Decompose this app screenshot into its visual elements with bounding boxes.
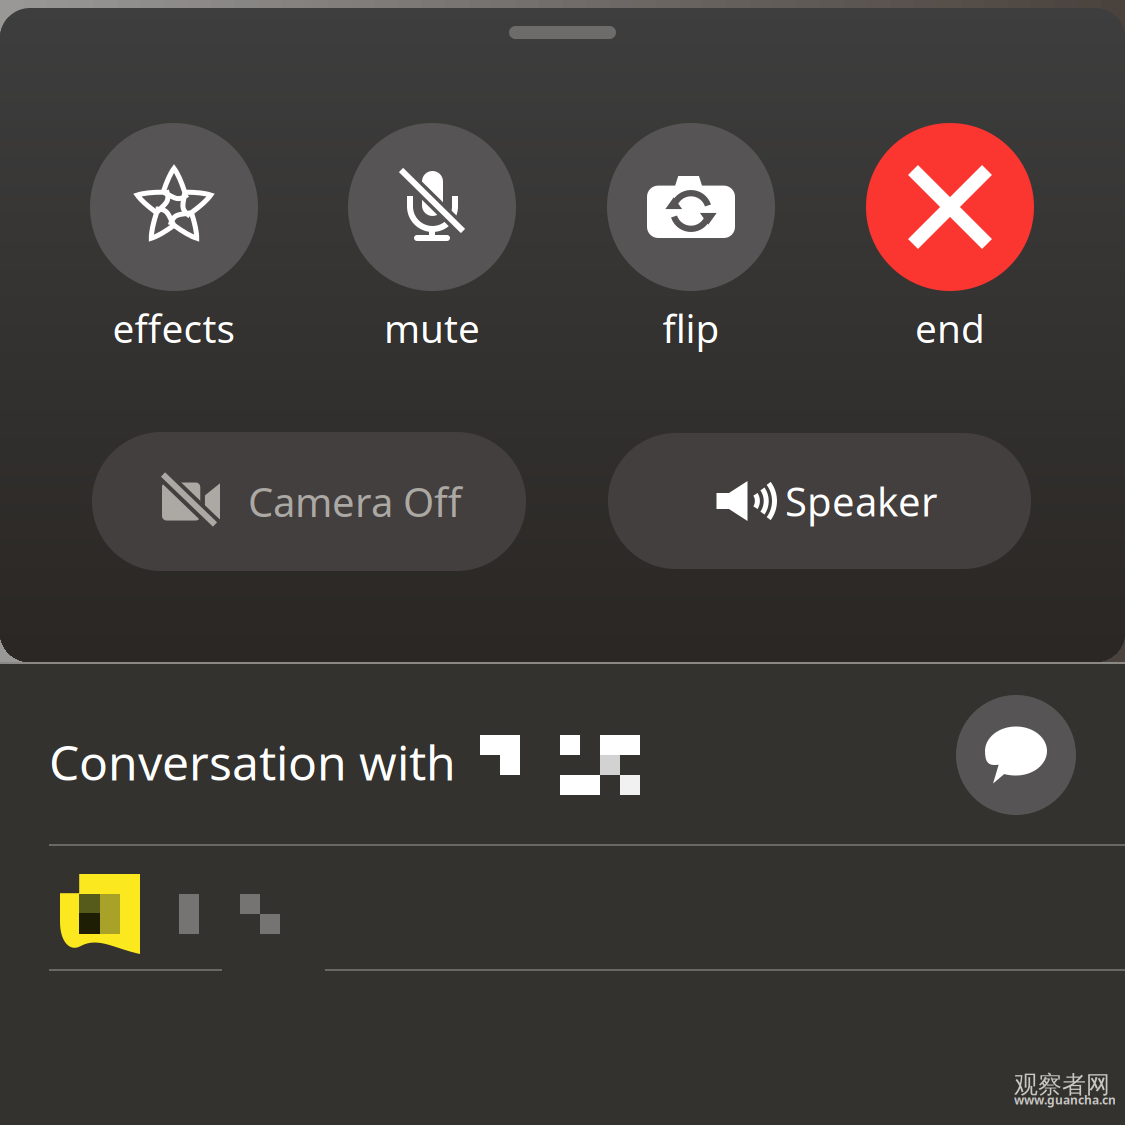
- staticText: mute: [384, 302, 480, 354]
- staticText: effects: [112, 302, 235, 354]
- button[interactable]: Conversation with: [0, 664, 1125, 844]
- staticText: Conversation with: [49, 730, 456, 794]
- button[interactable]: effects: [59, 123, 289, 365]
- button[interactable]: Messages: [956, 695, 1076, 815]
- staticText: 观察者网: [1014, 1070, 1110, 1099]
- button[interactable]: flip: [576, 123, 806, 365]
- button[interactable]: Camera Off: [92, 432, 526, 571]
- button[interactable]: Speaker: [608, 433, 1031, 569]
- staticText: end: [915, 302, 985, 354]
- button[interactable]: end: [835, 123, 1065, 365]
- staticText: Camera Off: [248, 475, 462, 528]
- staticText: flip: [662, 302, 719, 354]
- staticText: Speaker: [785, 474, 938, 527]
- button[interactable]: mute: [317, 123, 547, 365]
- staticText: www.guancha.cn: [1014, 1092, 1116, 1108]
